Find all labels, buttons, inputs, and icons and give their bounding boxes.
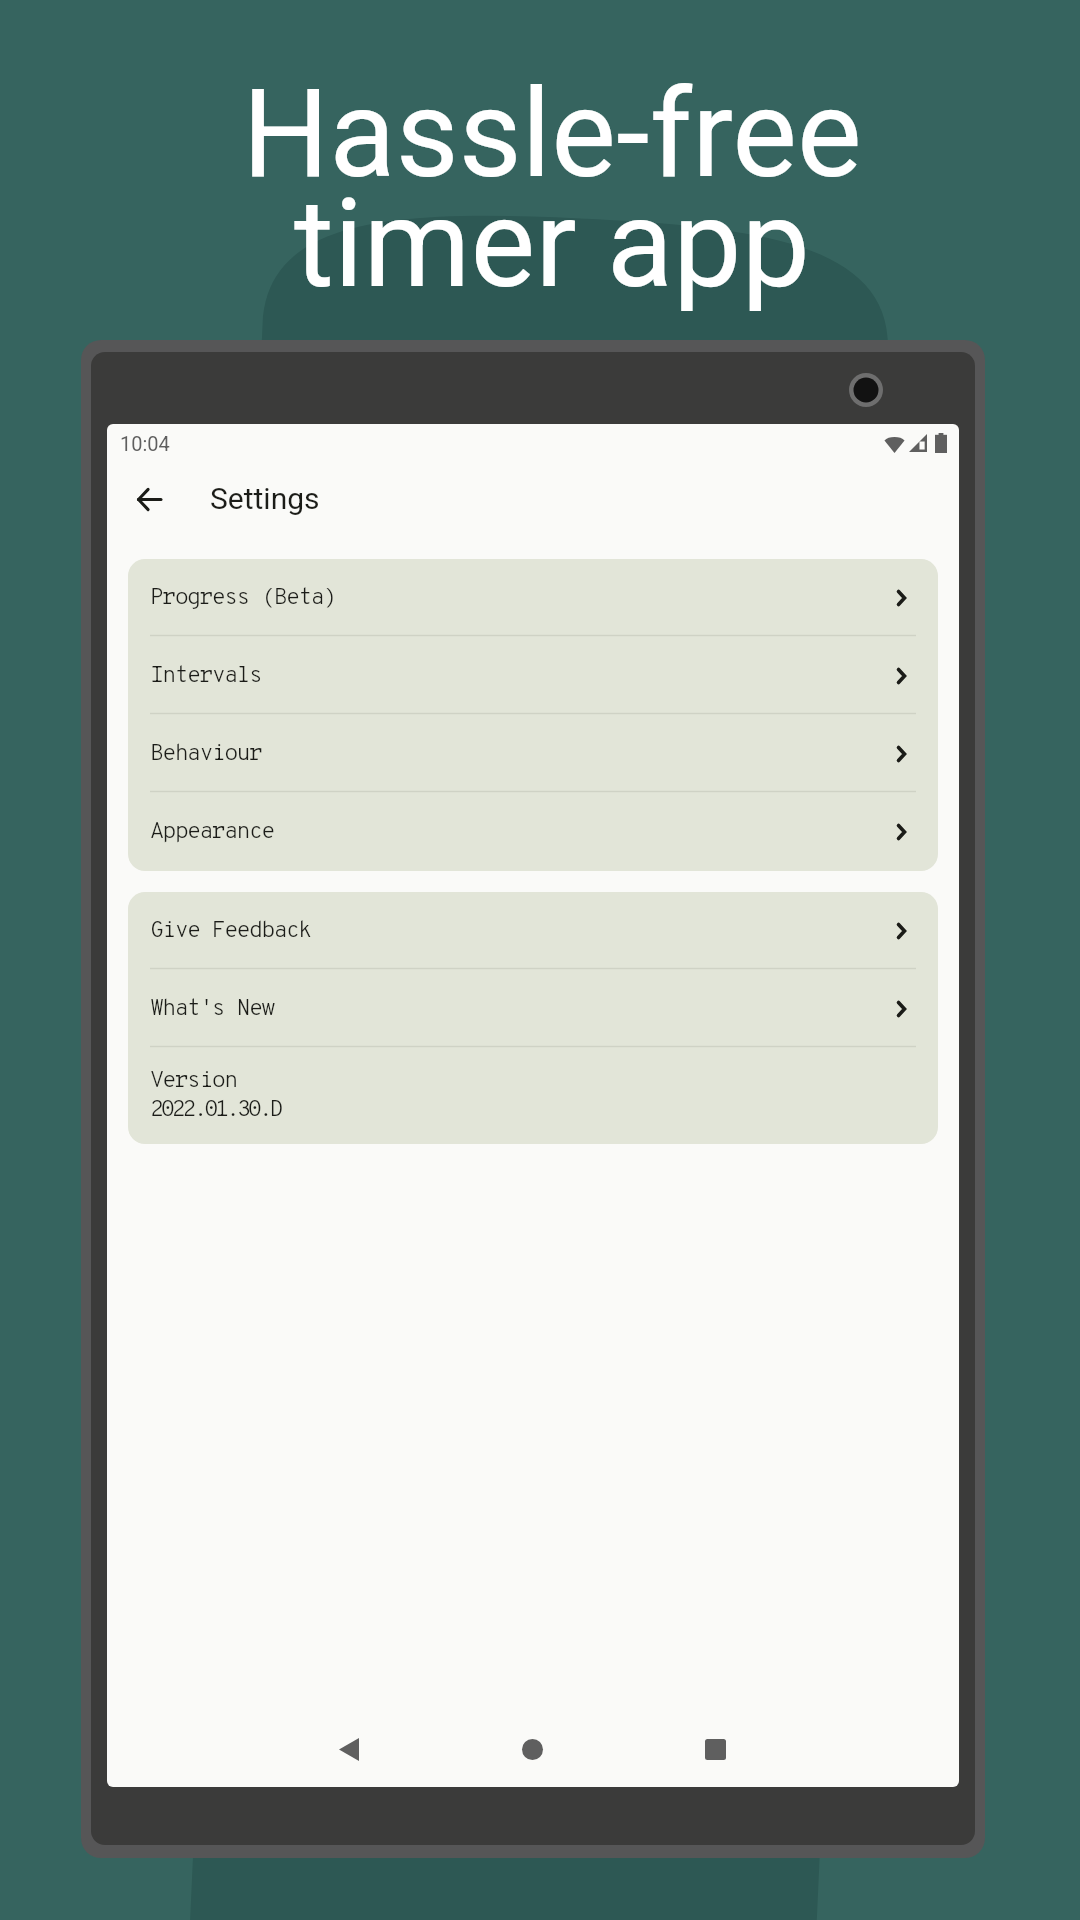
button[interactable]: Home	[504, 1721, 560, 1777]
staticText: Behaviour	[150, 740, 262, 769]
button[interactable]: Progress (Beta)	[128, 559, 938, 637]
button[interactable]: What's New	[128, 970, 938, 1048]
staticText: Appearance	[150, 818, 274, 847]
button[interactable]: Back	[321, 1721, 377, 1777]
staticText: Intervals	[150, 662, 262, 691]
staticText: Progress (Beta)	[150, 584, 336, 613]
staticText: Settings	[210, 481, 320, 516]
staticText: Hassle-free timer app	[12, 63, 1080, 316]
button[interactable]: Recents	[687, 1721, 743, 1777]
staticText: Give Feedback	[150, 917, 311, 946]
staticText: Version	[150, 1067, 237, 1096]
button[interactable]: Appearance	[128, 793, 938, 871]
button[interactable]: Intervals	[128, 637, 938, 715]
button[interactable]: Give Feedback	[128, 892, 938, 970]
button[interactable]: Back	[119, 469, 179, 529]
staticText: 10:04	[120, 432, 170, 455]
staticText: What's New	[150, 995, 274, 1024]
button[interactable]: Behaviour	[128, 715, 938, 793]
staticText: 2022.01.30.D	[150, 1096, 281, 1125]
